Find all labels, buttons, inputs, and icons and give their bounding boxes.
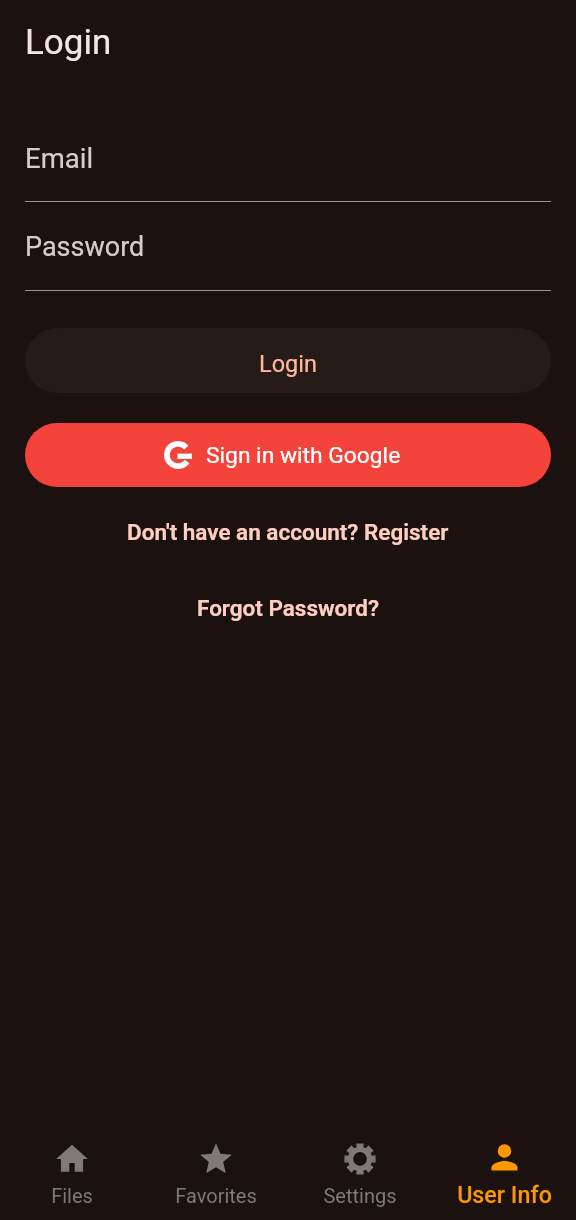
staticText: Files (51, 1184, 93, 1207)
button[interactable]: Forgot Password? (0, 592, 576, 624)
staticText: Settings (323, 1184, 397, 1207)
other: User Info (485, 1138, 524, 1177)
staticText: Email (25, 142, 94, 174)
button[interactable]: Settings (288, 1120, 432, 1152)
button[interactable]: Favorites (144, 1120, 288, 1158)
other: Settings (344, 1143, 376, 1175)
staticText: Don't have an account? Register (127, 519, 449, 545)
staticText: Sign in with Google (206, 442, 401, 469)
button[interactable]: Files (0, 1120, 144, 1158)
button[interactable]: Login (25, 328, 551, 393)
staticText: User Info (457, 1181, 552, 1208)
staticText: Favorites (175, 1184, 257, 1207)
button[interactable]: Don't have an account? Register (0, 516, 576, 548)
other: Favorites (197, 1140, 235, 1178)
staticText: Login (259, 350, 317, 378)
button[interactable]: User Info (432, 1120, 576, 1159)
staticText: Login (25, 22, 112, 63)
other: Files (53, 1140, 91, 1178)
staticText: Password (25, 231, 145, 263)
staticText: Forgot Password? (197, 595, 379, 621)
button[interactable]: Sign in with Google (25, 423, 551, 487)
